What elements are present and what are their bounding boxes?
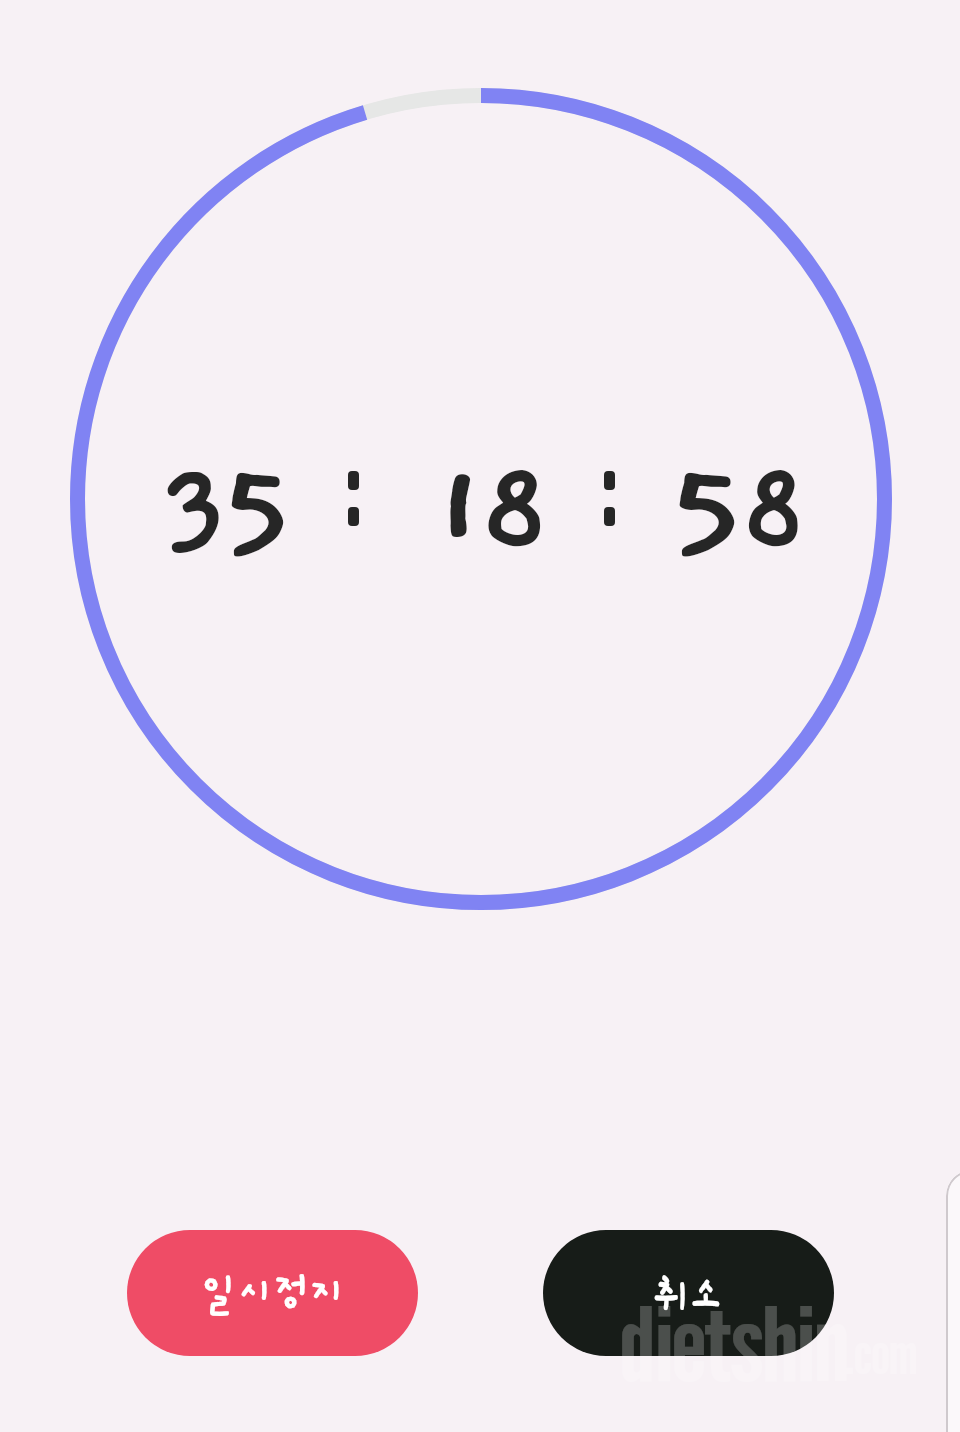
staticText: 8 bbox=[479, 446, 554, 573]
staticText: dietshin bbox=[620, 1281, 849, 1405]
button[interactable]: 취소 bbox=[543, 1230, 834, 1356]
staticText: 5 bbox=[664, 446, 754, 573]
button[interactable]: 일시정지 bbox=[127, 1230, 418, 1356]
staticText: 1 bbox=[429, 446, 494, 573]
staticText: 3 bbox=[162, 446, 232, 573]
staticText: 일시정지 bbox=[201, 1270, 344, 1316]
staticText: 취소 bbox=[655, 1269, 722, 1324]
staticText: 5 bbox=[217, 446, 301, 573]
staticText: 8 bbox=[740, 446, 811, 573]
